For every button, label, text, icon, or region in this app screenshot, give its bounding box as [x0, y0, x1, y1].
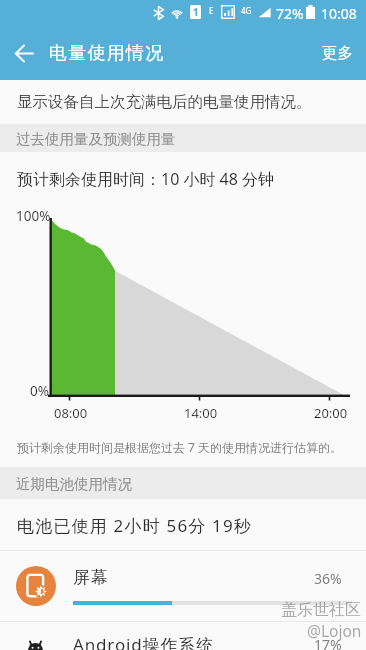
staticText: 屏幕	[73, 567, 109, 588]
button[interactable]: 屏幕	[0, 551, 366, 621]
staticText: 预计剩余使用时间是根据您过去 7 天的使用情况进行估算的。	[17, 439, 343, 455]
staticText: E	[209, 5, 214, 16]
staticText: 72%	[276, 4, 304, 23]
staticText: 14:00	[184, 404, 218, 422]
staticText: 10:08	[321, 4, 357, 23]
staticText: 更多	[322, 43, 353, 63]
staticText: 20:00	[314, 404, 348, 422]
staticText: 显示设备自上次充满电后的电量使用情况。	[17, 92, 312, 112]
staticText: 100%	[16, 207, 51, 225]
button[interactable]: 更多	[306, 27, 366, 79]
staticText: 电量使用情况	[49, 42, 165, 65]
staticText: 盖乐世社区	[281, 600, 361, 620]
staticText: 08:00	[54, 404, 88, 422]
staticText: 过去使用量及预测使用量	[16, 130, 176, 148]
staticText: @Lojon	[307, 620, 362, 641]
staticText: 预计剩余使用时间：10 小时 48 分钟	[17, 168, 275, 190]
button[interactable]: Android操作系统	[0, 622, 366, 650]
staticText: 36%	[314, 569, 342, 588]
staticText: 1	[193, 5, 199, 19]
staticText: 电池已使用 2小时 56分 19秒	[17, 514, 253, 537]
staticText: 4G	[241, 5, 252, 16]
staticText: 17%	[314, 635, 342, 650]
staticText: 近期电池使用情况	[16, 475, 132, 493]
staticText: Android操作系统	[73, 633, 214, 650]
button[interactable]: Back	[0, 26, 48, 80]
staticText: 0%	[30, 382, 49, 400]
